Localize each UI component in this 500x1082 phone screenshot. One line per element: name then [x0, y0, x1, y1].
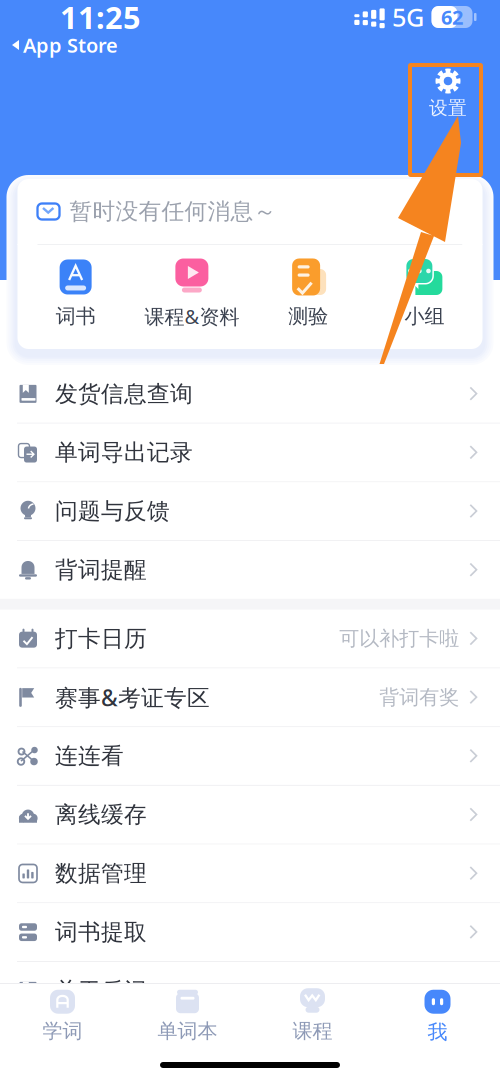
- button[interactable]: 词书: [17, 258, 134, 329]
- button[interactable]: 课程&资料: [134, 257, 250, 330]
- staticText: 5G: [392, 0, 424, 34]
- staticText: 课程: [292, 1019, 332, 1043]
- staticText: 连连看: [55, 742, 124, 770]
- staticText: 发货信息查询: [55, 380, 193, 408]
- staticText: 关于后记: [55, 977, 147, 1005]
- button[interactable]: 数据管理: [0, 845, 500, 902]
- button[interactable]: App Store: [0, 34, 126, 56]
- button[interactable]: 词书提取: [0, 903, 500, 961]
- staticText: 11:25: [60, 0, 141, 37]
- button[interactable]: 关于后记: [0, 962, 500, 1020]
- button[interactable]: 赛事&考证专区: [0, 668, 500, 726]
- button[interactable]: 单词本: [125, 984, 250, 1048]
- staticText: App Store: [23, 32, 118, 58]
- button[interactable]: 小组: [366, 258, 482, 329]
- staticText: 词书提取: [55, 918, 147, 946]
- staticText: 离线缓存: [55, 801, 147, 829]
- staticText: 单词本: [157, 1019, 217, 1043]
- staticText: 数据管理: [55, 859, 147, 887]
- button[interactable]: 打卡日历: [0, 610, 500, 667]
- button[interactable]: 问题与反馈: [0, 482, 500, 540]
- button[interactable]: 离线缓存: [0, 786, 500, 844]
- button[interactable]: 课程: [250, 984, 375, 1048]
- staticText: 背词提醒: [55, 556, 147, 584]
- staticText: 我: [427, 1020, 447, 1044]
- staticText: 小组: [404, 304, 444, 329]
- staticText: 问题与反馈: [55, 497, 170, 525]
- staticText: 词书: [56, 304, 96, 329]
- button[interactable]: 设置: [416, 68, 480, 120]
- button[interactable]: 学词: [0, 984, 125, 1048]
- staticText: 背词有奖: [379, 685, 459, 710]
- staticText: 单词导出记录: [55, 439, 193, 466]
- staticText: 学词: [42, 1019, 82, 1043]
- staticText: 测验: [288, 304, 328, 329]
- button[interactable]: 背词提醒: [0, 541, 500, 599]
- button[interactable]: 暂时没有任何消息～: [17, 179, 482, 244]
- staticText: 暂时没有任何消息～: [69, 198, 276, 225]
- button[interactable]: 连连看: [0, 727, 500, 785]
- button[interactable]: 我: [375, 984, 500, 1048]
- staticText: 62: [441, 4, 463, 30]
- staticText: 赛事&考证专区: [55, 682, 210, 712]
- button[interactable]: 单词导出记录: [0, 424, 500, 481]
- staticText: 可以补打卡啦: [339, 626, 459, 651]
- button[interactable]: 测验: [250, 258, 366, 329]
- button[interactable]: 发货信息查询: [0, 365, 500, 423]
- staticText: 课程&资料: [144, 303, 239, 330]
- staticText: 打卡日历: [55, 625, 147, 652]
- staticText: 设置: [429, 96, 467, 119]
